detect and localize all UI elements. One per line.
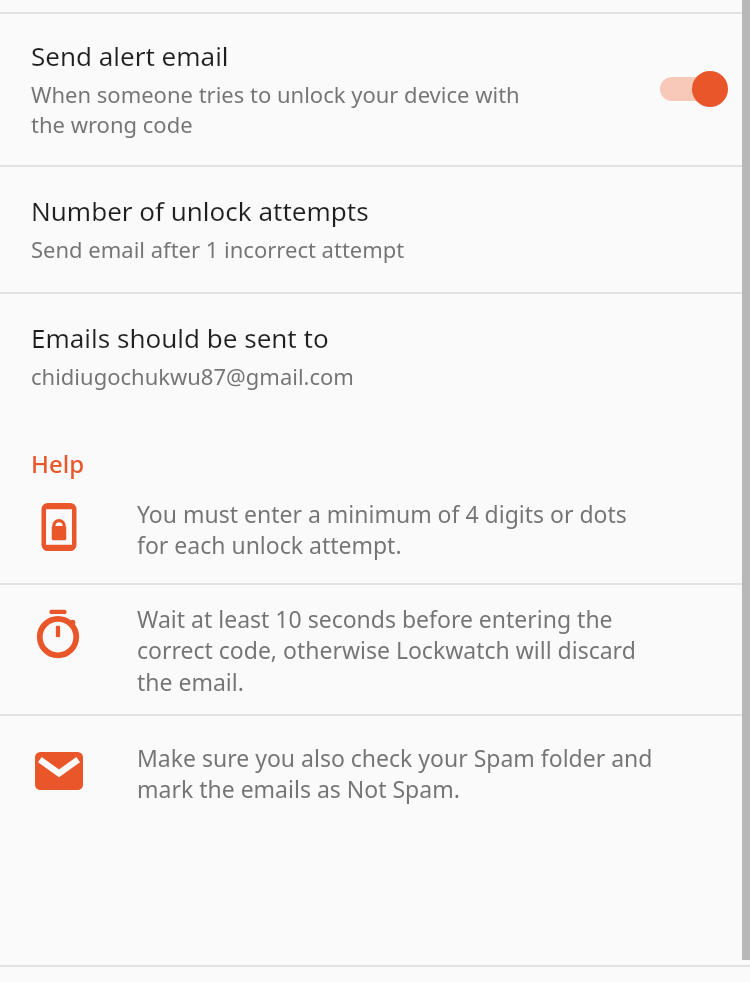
staticText: chidiugochukwu87@gmail.com bbox=[31, 361, 354, 391]
staticText: Make sure you also check your Spam folde… bbox=[137, 742, 726, 805]
button[interactable]: Send alert email bbox=[0, 14, 750, 165]
button[interactable]: Wait at least 10 seconds before entering… bbox=[0, 585, 750, 714]
staticText: Number of unlock attempts bbox=[31, 193, 369, 228]
staticText: Emails should be sent to bbox=[31, 320, 329, 355]
staticText: You must enter a minimum of 4 digits or … bbox=[137, 498, 726, 561]
staticText: When someone tries to unlock your device… bbox=[31, 79, 520, 139]
button[interactable]: Make sure you also check your Spam folde… bbox=[0, 716, 750, 831]
button[interactable]: Number of unlock attempts bbox=[0, 167, 750, 292]
staticText: Help bbox=[31, 447, 85, 480]
staticText: Wait at least 10 seconds before entering… bbox=[137, 603, 726, 698]
button[interactable]: You must enter a minimum of 4 digits or … bbox=[0, 484, 750, 583]
button[interactable]: Emails should be sent to bbox=[0, 294, 750, 409]
button[interactable]: Send alert email toggle bbox=[656, 69, 730, 109]
staticText: Send alert email bbox=[31, 38, 229, 73]
staticText: Send email after 1 incorrect attempt bbox=[31, 234, 405, 264]
